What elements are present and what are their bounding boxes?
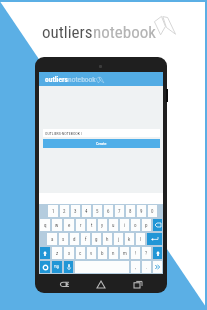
staticText: ?1@ bbox=[54, 265, 60, 269]
button[interactable]: 2 bbox=[60, 205, 69, 217]
button[interactable]: ! bbox=[131, 247, 140, 259]
staticText: o bbox=[134, 222, 137, 228]
staticText: Create bbox=[96, 141, 107, 146]
staticText: h bbox=[106, 236, 109, 242]
button[interactable]: t bbox=[87, 219, 96, 231]
staticText: e bbox=[68, 222, 71, 228]
staticText: q bbox=[44, 222, 47, 228]
staticText: 4 bbox=[85, 208, 88, 214]
staticText: d bbox=[73, 236, 76, 242]
button[interactable]: y bbox=[98, 219, 107, 231]
button[interactable]: x bbox=[64, 247, 74, 259]
button[interactable]: Create bbox=[43, 139, 160, 148]
button[interactable]: 7 bbox=[115, 205, 124, 217]
staticText: outliers bbox=[45, 75, 68, 84]
button[interactable]: r bbox=[76, 219, 85, 231]
button[interactable]: k bbox=[125, 233, 134, 245]
button[interactable] bbox=[40, 247, 50, 259]
staticText: v bbox=[90, 250, 93, 256]
staticText: notebook bbox=[68, 75, 96, 84]
button[interactable] bbox=[147, 233, 162, 245]
staticText: i bbox=[124, 222, 126, 228]
staticText: 1 bbox=[52, 208, 55, 214]
button[interactable]: 3 bbox=[71, 205, 80, 217]
button[interactable]: e bbox=[64, 219, 74, 231]
button[interactable]: v bbox=[87, 247, 96, 259]
staticText: l bbox=[140, 236, 142, 242]
staticText: s bbox=[62, 236, 65, 242]
button[interactable]: b bbox=[98, 247, 107, 259]
button[interactable]: j bbox=[114, 233, 123, 245]
button[interactable]: h bbox=[103, 233, 112, 245]
staticText: x bbox=[68, 250, 71, 256]
staticText: 5 bbox=[96, 208, 99, 214]
staticText: w bbox=[55, 222, 59, 228]
staticText: , bbox=[135, 264, 136, 270]
button[interactable] bbox=[40, 261, 50, 273]
staticText: k bbox=[128, 236, 131, 242]
button[interactable]: Recents bbox=[130, 276, 146, 292]
staticText: 6 bbox=[107, 208, 110, 214]
staticText: j bbox=[118, 236, 120, 242]
staticText: y bbox=[101, 222, 104, 228]
button[interactable]: n bbox=[109, 247, 118, 259]
staticText: 8 bbox=[129, 208, 132, 214]
button[interactable] bbox=[153, 247, 162, 259]
button[interactable] bbox=[153, 261, 162, 273]
staticText: outliers bbox=[42, 22, 93, 42]
staticText: OUTLIERS-NOTEBOOK | bbox=[45, 131, 82, 136]
button[interactable]: 8 bbox=[126, 205, 135, 217]
staticText: 2 bbox=[63, 208, 66, 214]
button[interactable]: f bbox=[81, 233, 90, 245]
button[interactable]: l bbox=[136, 233, 145, 245]
staticText: ? bbox=[145, 250, 148, 256]
button[interactable]: OUTLIERS-NOTEBOOK | bbox=[43, 129, 160, 137]
staticText: m bbox=[123, 250, 127, 256]
button[interactable]: g bbox=[92, 233, 101, 245]
staticText: 3 bbox=[74, 208, 77, 214]
button[interactable]: q bbox=[40, 219, 50, 231]
button[interactable]: 6 bbox=[104, 205, 113, 217]
button[interactable]: z bbox=[52, 247, 62, 259]
button[interactable]: Home bbox=[93, 276, 109, 292]
staticText: t bbox=[91, 222, 93, 228]
button[interactable]: c bbox=[76, 247, 85, 259]
button[interactable]: ? bbox=[142, 247, 151, 259]
staticText: r bbox=[80, 222, 82, 228]
button[interactable]: ?1@ bbox=[52, 261, 62, 273]
staticText: f bbox=[85, 236, 87, 242]
button[interactable]: Back bbox=[56, 276, 72, 292]
button[interactable]: i bbox=[120, 219, 129, 231]
staticText: u bbox=[112, 222, 115, 228]
staticText: 9 bbox=[140, 208, 143, 214]
button[interactable]: 4 bbox=[82, 205, 91, 217]
staticText: p bbox=[145, 222, 148, 228]
button[interactable]: 0 bbox=[148, 205, 157, 217]
staticText: notebook bbox=[93, 22, 156, 42]
staticText: b bbox=[101, 250, 104, 256]
staticText: 7 bbox=[118, 208, 121, 214]
staticText: a bbox=[51, 236, 54, 242]
staticText: . bbox=[146, 264, 148, 270]
button[interactable]: , bbox=[131, 261, 140, 273]
staticText: c bbox=[79, 250, 82, 256]
button[interactable]: a bbox=[47, 233, 57, 245]
button[interactable] bbox=[64, 261, 73, 273]
button[interactable]: o bbox=[131, 219, 140, 231]
button[interactable]: . bbox=[142, 261, 151, 273]
staticText: z bbox=[56, 250, 59, 256]
button[interactable]: 9 bbox=[137, 205, 146, 217]
button[interactable]: m bbox=[120, 247, 129, 259]
button[interactable]: 1 bbox=[48, 205, 58, 217]
button[interactable]: 5 bbox=[93, 205, 102, 217]
button[interactable]: d bbox=[70, 233, 79, 245]
staticText: 0 bbox=[151, 208, 154, 214]
staticText: n bbox=[112, 250, 115, 256]
button[interactable]: u bbox=[109, 219, 118, 231]
button[interactable]: w bbox=[52, 219, 62, 231]
button[interactable] bbox=[153, 219, 162, 231]
button[interactable]: s bbox=[59, 233, 68, 245]
staticText: ! bbox=[135, 250, 137, 256]
button[interactable]: p bbox=[142, 219, 151, 231]
